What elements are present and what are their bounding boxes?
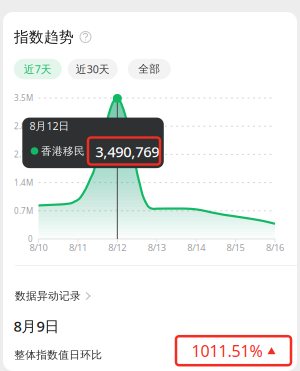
staticText: 3.5M bbox=[14, 93, 33, 103]
button[interactable]: 近7天 bbox=[14, 59, 62, 79]
staticText: 近30天 bbox=[76, 62, 110, 76]
staticText: 8/11 bbox=[69, 241, 87, 254]
staticText: 整体指数值日环比 bbox=[14, 348, 102, 361]
staticText: 近7天 bbox=[24, 62, 52, 76]
staticText: 1011.51% bbox=[191, 340, 262, 361]
button[interactable]: 数据异动记录 bbox=[0, 282, 300, 310]
staticText: 8月9日 bbox=[14, 316, 60, 336]
staticText: 8/10 bbox=[29, 241, 47, 254]
staticText: 指数趋势 bbox=[14, 28, 74, 46]
staticText: 0.7M bbox=[14, 205, 33, 216]
staticText: 8月12日 bbox=[29, 119, 69, 133]
staticText: 1.4M bbox=[14, 177, 33, 188]
staticText: 8/14 bbox=[187, 241, 205, 254]
button[interactable]: 近30天 bbox=[68, 59, 118, 79]
staticText: 8/12 bbox=[108, 241, 126, 254]
staticText: 8/13 bbox=[148, 241, 166, 254]
staticText: 2.8M bbox=[14, 121, 33, 131]
staticText: 8/16 bbox=[266, 241, 284, 254]
staticText: 8/15 bbox=[227, 241, 245, 254]
staticText: 数据异动记录 bbox=[15, 289, 81, 302]
staticText: 2.1M bbox=[14, 149, 33, 160]
button[interactable]: 全部 bbox=[128, 59, 171, 79]
staticText: 香港移民 bbox=[41, 145, 85, 158]
staticText: 全部 bbox=[138, 62, 160, 76]
staticText: 0 bbox=[28, 234, 33, 244]
staticText: 3,490,769 bbox=[95, 142, 159, 161]
